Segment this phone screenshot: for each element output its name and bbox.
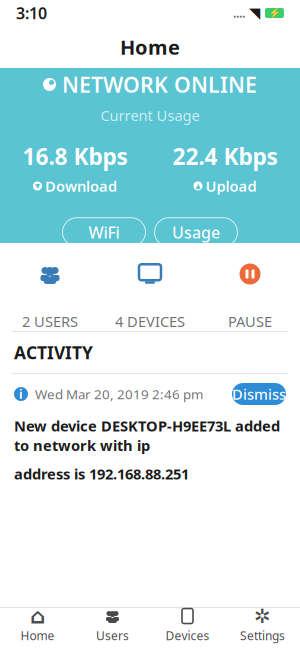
button[interactable]: ✲ — [225, 605, 300, 649]
staticText: Upload — [205, 176, 256, 196]
staticText: Wed Mar 20, 2019 2:46 pm — [35, 385, 203, 403]
staticText: i — [19, 631, 23, 647]
staticText: Dismiss — [232, 629, 286, 649]
button[interactable]: Devices — [150, 605, 225, 649]
button[interactable]: PAUSE — [200, 255, 300, 331]
staticText: Dismiss — [232, 384, 286, 404]
staticText: Users — [96, 627, 129, 643]
button[interactable]: Usage — [154, 218, 237, 247]
staticText: Home — [20, 627, 54, 643]
staticText: PAUSE — [228, 311, 272, 331]
staticText: Tue Mar 12, 2019 8:29 pm — [35, 630, 198, 648]
staticText: ▲ — [195, 182, 200, 190]
staticText: Devices — [165, 627, 209, 643]
staticText: i — [19, 386, 23, 402]
button[interactable]: 4 DEVICES — [100, 255, 200, 331]
staticText: 16.8 Kbps — [22, 141, 127, 171]
staticText: ⚡ — [268, 8, 280, 18]
button[interactable]: Dismiss — [232, 628, 286, 649]
staticText: NETWORK ONLINE — [62, 70, 257, 99]
button[interactable]: ⌂ — [0, 605, 75, 649]
staticText: WiFi — [88, 222, 119, 243]
button[interactable]: Users — [75, 605, 150, 649]
staticText: ✲ — [254, 605, 271, 627]
staticText: ⌂ — [30, 604, 45, 628]
staticText: ▼ — [35, 182, 40, 190]
staticText: ACTIVITY — [14, 341, 93, 364]
button[interactable]: Dismiss — [232, 383, 286, 405]
staticText: .... — [233, 5, 245, 21]
staticText: New device DESKTOP-H9EE73L added to netw… — [14, 416, 280, 455]
button[interactable]: 2 USERS — [0, 255, 100, 331]
staticText: Usage — [172, 222, 220, 243]
staticText: Current Usage — [100, 106, 199, 125]
staticText: Home — [120, 34, 180, 60]
staticText: 22.4 Kbps — [172, 141, 277, 171]
staticText: 3:10 — [16, 2, 47, 24]
button[interactable]: WiFi — [62, 218, 145, 247]
staticText: 2 USERS — [22, 311, 78, 331]
staticText: Download — [45, 176, 117, 196]
staticText: 4 DEVICES — [115, 311, 185, 331]
staticText: address is 192.168.88.251 — [14, 464, 189, 483]
staticText: Settings — [240, 627, 285, 643]
staticText: ◥ — [249, 5, 260, 21]
